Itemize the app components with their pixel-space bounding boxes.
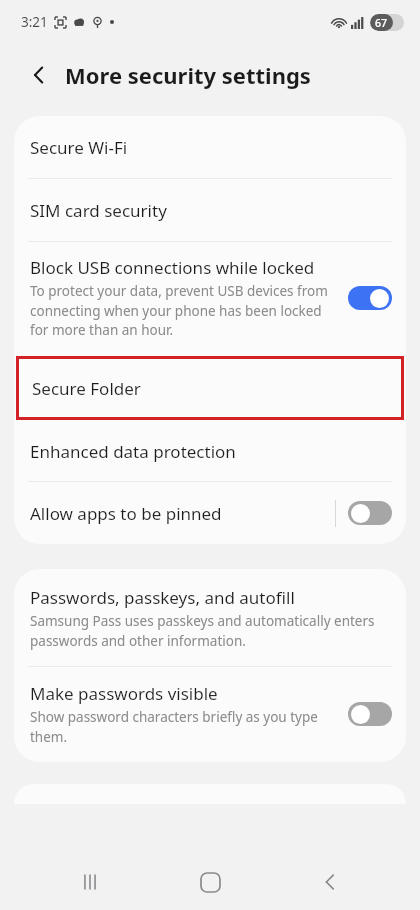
staticText: Secure Wi-Fi <box>30 136 128 159</box>
button[interactable]: Home <box>180 854 240 910</box>
staticText: Samsung Pass uses passkeys and automatic… <box>30 612 390 650</box>
button[interactable]: Make passwords visible <box>14 667 406 762</box>
staticText: 67 <box>375 16 388 30</box>
button[interactable]: Toggle off <box>348 702 392 726</box>
staticText: Block USB connections while locked <box>30 256 315 279</box>
button[interactable]: SIM card security <box>14 179 406 241</box>
button[interactable]: Toggle on <box>348 286 392 310</box>
button[interactable]: Recents <box>60 854 120 910</box>
button[interactable]: Enhanced data protection <box>14 421 406 481</box>
button[interactable]: Passwords, passkeys, and autofill <box>14 569 406 666</box>
button[interactable]: Secure Wi-Fi <box>14 116 406 178</box>
staticText: Make passwords visible <box>30 682 218 705</box>
staticText: Secure Folder <box>32 377 141 400</box>
button[interactable]: Back <box>22 58 56 92</box>
staticText: More security settings <box>65 60 311 90</box>
staticText: 3:21 <box>21 13 48 31</box>
staticText: Show password characters briefly as you … <box>30 708 336 746</box>
staticText: Enhanced data protection <box>30 440 236 463</box>
staticText: Allow apps to be pinned <box>30 502 335 525</box>
staticText: Passwords, passkeys, and autofill <box>30 586 295 609</box>
button[interactable]: Allow apps to be pinned <box>14 482 406 544</box>
staticText: SIM card security <box>30 199 167 222</box>
button[interactable]: Secure Folder <box>14 355 406 421</box>
button[interactable]: Back <box>300 854 360 910</box>
button[interactable]: Toggle off <box>348 501 392 525</box>
button[interactable]: Block USB connections while locked <box>14 242 406 355</box>
staticText: To protect your data, prevent USB device… <box>30 282 336 339</box>
